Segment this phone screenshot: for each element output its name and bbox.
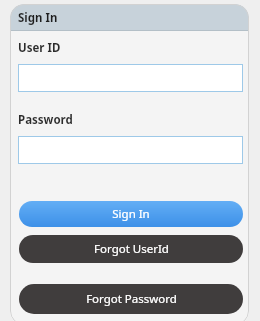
button[interactable]: Forgot UserId <box>19 235 243 263</box>
button[interactable] <box>18 136 243 164</box>
staticText: Forgot Password <box>86 291 177 307</box>
staticText: Sign In <box>18 10 58 26</box>
staticText: Sign In <box>112 206 150 222</box>
button[interactable]: Sign In <box>10 4 249 31</box>
staticText: User ID <box>18 40 61 56</box>
staticText: Forgot UserId <box>94 241 169 257</box>
button[interactable]: Forgot Password <box>19 284 243 314</box>
button[interactable]: Sign In <box>19 201 243 227</box>
staticText: Password <box>18 112 73 128</box>
button[interactable] <box>18 64 243 92</box>
